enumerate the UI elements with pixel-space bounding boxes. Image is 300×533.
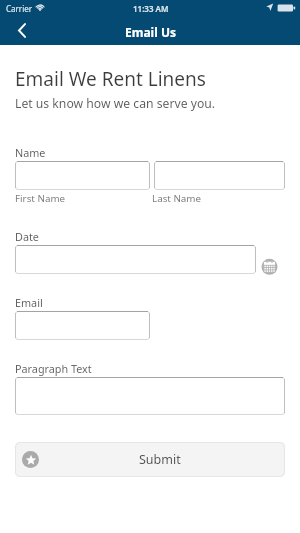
staticText: Date	[15, 229, 39, 244]
staticText: Name	[15, 145, 46, 160]
button[interactable]: Email	[15, 311, 150, 340]
staticText: 11:33 AM	[133, 3, 169, 14]
staticText: First Name	[15, 192, 66, 205]
staticText: Submit	[139, 451, 181, 468]
button[interactable]: Pick date	[261, 258, 279, 276]
staticText: Email Us	[125, 24, 176, 40]
button[interactable]: Submit	[15, 442, 285, 477]
staticText: Carrier	[6, 3, 33, 14]
staticText: Email We Rent Linens	[15, 66, 206, 92]
staticText: Last Name	[152, 192, 202, 205]
staticText: Email	[15, 295, 43, 310]
button[interactable]: Back	[0, 16, 44, 45]
staticText: Let us know how we can serve you.	[15, 95, 216, 112]
button[interactable]: Last Name	[154, 161, 285, 190]
staticText: Paragraph Text	[15, 361, 92, 376]
button[interactable]: Date	[15, 245, 256, 274]
button[interactable]: First Name	[15, 161, 150, 190]
button[interactable]: Paragraph Text	[15, 377, 285, 415]
